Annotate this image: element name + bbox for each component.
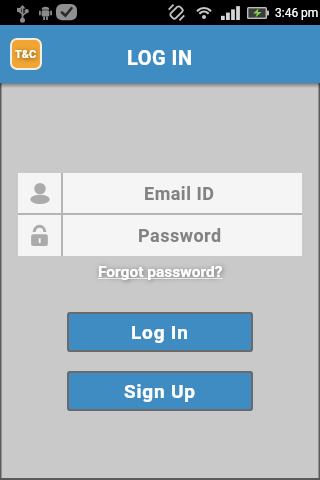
button[interactable]: Password [18, 215, 302, 256]
staticText: Sign Up [124, 380, 196, 402]
staticText: LOG IN [127, 46, 193, 69]
button[interactable]: Email ID [18, 173, 302, 213]
staticText: Email ID [144, 183, 215, 204]
button[interactable]: Log In [67, 312, 253, 352]
button[interactable]: Sign Up [67, 371, 253, 411]
staticText: T&C [15, 48, 37, 61]
button[interactable]: Forgot password? [98, 263, 223, 281]
button[interactable]: T&C [10, 38, 42, 70]
staticText: 3:46 pm [275, 6, 319, 20]
staticText: Forgot password? [98, 263, 223, 281]
staticText: Log In [131, 321, 189, 343]
staticText: Password [138, 225, 222, 246]
